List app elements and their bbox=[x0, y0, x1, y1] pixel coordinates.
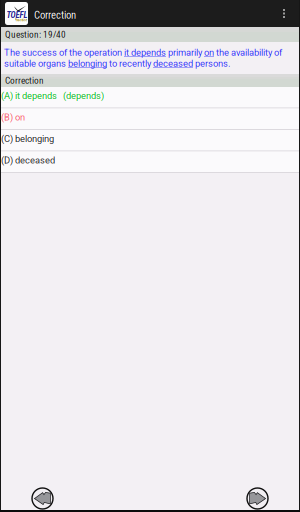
staticText: Question: 19/40 bbox=[5, 29, 66, 40]
staticText: (D) deceased bbox=[1, 155, 55, 166]
staticText: (C) belonging bbox=[1, 133, 54, 144]
staticText: (B) on bbox=[1, 112, 25, 123]
button[interactable]: (C) belonging bbox=[0, 130, 300, 150]
staticText: Correction bbox=[34, 9, 76, 21]
button[interactable]: (B) on bbox=[0, 108, 300, 129]
button[interactable]: Previous question bbox=[32, 488, 53, 509]
button[interactable]: Next question bbox=[247, 488, 268, 509]
staticText: Practice bbox=[14, 18, 27, 22]
staticText: Correction bbox=[5, 75, 44, 86]
button[interactable]: (D) deceased bbox=[0, 151, 300, 172]
button[interactable]: More options bbox=[273, 0, 295, 27]
staticText: (A) it depends (depends) bbox=[1, 90, 104, 101]
staticText: The success of the operation it depends … bbox=[4, 47, 282, 69]
button[interactable]: (A) it depends (depends) bbox=[0, 87, 300, 107]
staticText: TOEFL bbox=[6, 10, 27, 20]
